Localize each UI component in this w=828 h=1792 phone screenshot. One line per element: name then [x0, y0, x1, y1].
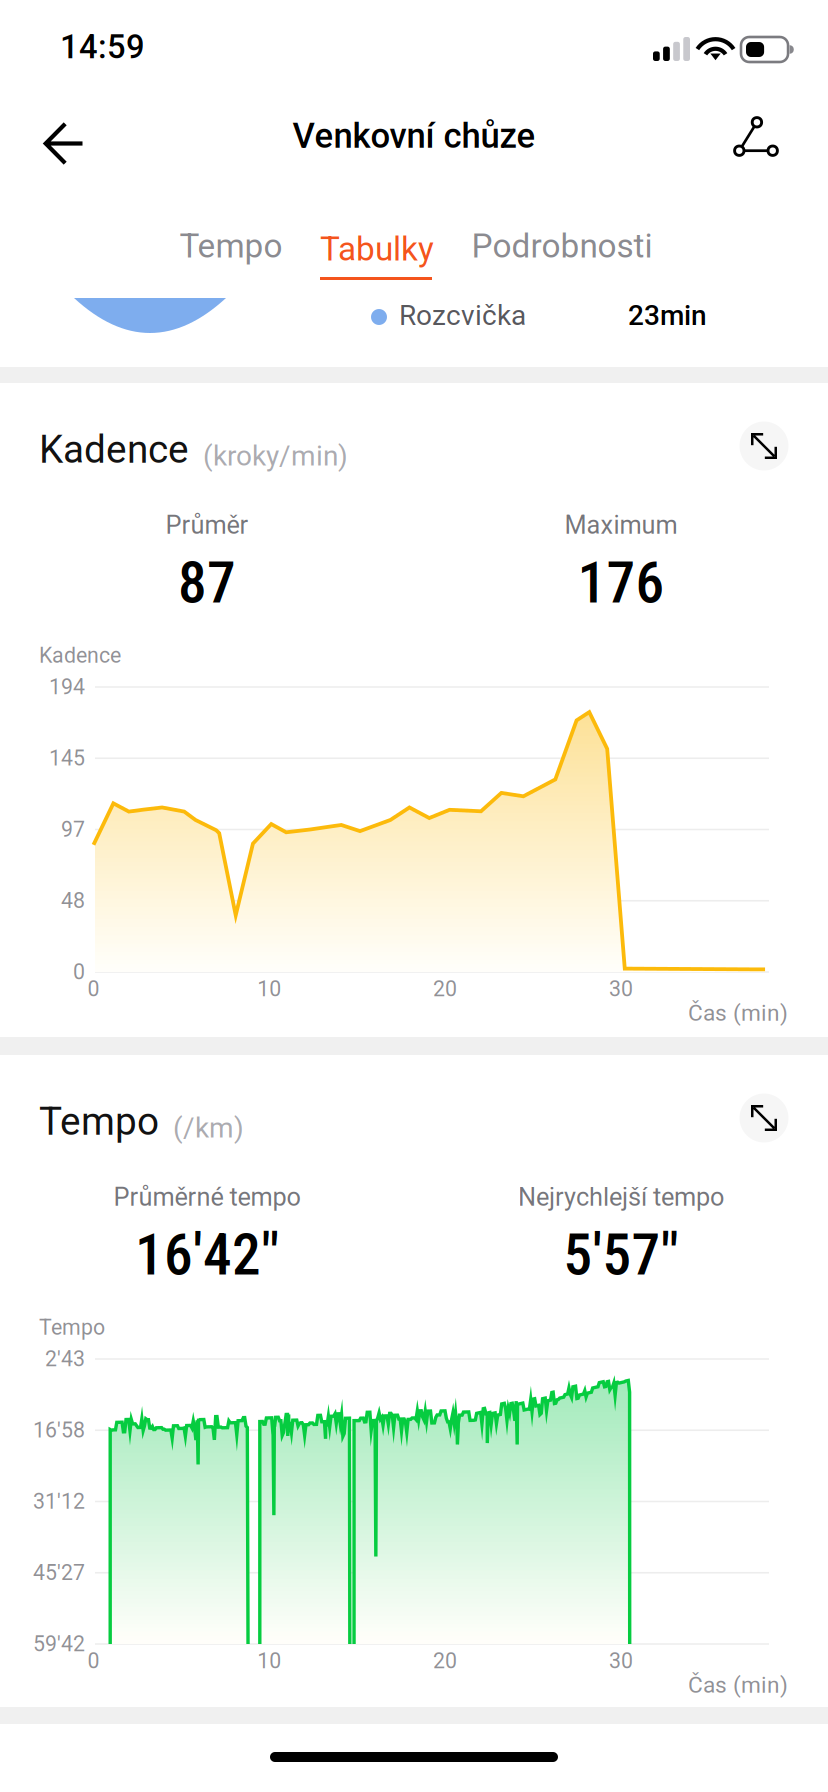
button[interactable]: Expand chart — [731, 413, 797, 479]
button[interactable]: Back — [24, 88, 134, 185]
button[interactable]: Share — [700, 88, 810, 185]
staticText: 31'12 — [33, 1489, 85, 1514]
button[interactable]: Tabulky — [302, 217, 452, 281]
staticText: 97 — [61, 817, 85, 842]
staticText: 87 — [178, 549, 236, 617]
button[interactable]: Tempo — [166, 217, 296, 275]
staticText: 20 — [433, 1648, 457, 1673]
staticText: Nejrychlejší tempo — [518, 1182, 724, 1212]
staticText: 10 — [257, 1648, 281, 1673]
staticText: Podrobnosti — [471, 226, 652, 266]
staticText: Tabulky — [320, 229, 434, 269]
staticText: 194 — [49, 674, 85, 699]
staticText: 0 — [87, 976, 99, 1001]
staticText: 0 — [87, 1648, 99, 1673]
staticText: 145 — [49, 746, 85, 771]
staticText: Venkovní chůze — [292, 116, 535, 156]
staticText: 0 — [73, 959, 85, 984]
staticText: 10 — [257, 976, 281, 1001]
staticText: 5'57" — [563, 1221, 678, 1289]
staticText: 23min — [628, 299, 707, 332]
staticText: Čas (min) — [688, 1672, 788, 1698]
staticText: Rozcvička — [399, 299, 526, 332]
staticText: 16'42" — [135, 1221, 279, 1289]
staticText: 20 — [433, 976, 457, 1001]
staticText: 16'58 — [33, 1418, 85, 1443]
staticText: 59'42 — [33, 1631, 85, 1656]
staticText: 176 — [577, 549, 664, 617]
button[interactable]: Podrobnosti — [454, 217, 670, 275]
staticText: 48 — [61, 888, 85, 913]
staticText: (/km) — [159, 1111, 244, 1144]
staticText: Průměr — [165, 510, 248, 540]
staticText: Kadence — [39, 643, 121, 668]
staticText: Průměrné tempo — [113, 1182, 300, 1212]
staticText: 45'27 — [33, 1560, 85, 1585]
button[interactable]: Expand chart — [731, 1085, 797, 1151]
staticText: Tempo — [39, 1315, 105, 1340]
staticText: 2'43 — [45, 1346, 85, 1371]
staticText: Maximum — [564, 510, 677, 540]
staticText: Čas (min) — [688, 1000, 788, 1026]
staticText: Kadence — [39, 427, 189, 472]
staticText: (kroky/min) — [189, 439, 348, 472]
staticText: 30 — [609, 1648, 633, 1673]
staticText: 30 — [609, 976, 633, 1001]
staticText: Tempo — [179, 226, 282, 266]
staticText: 14:59 — [60, 28, 145, 66]
staticText: Tempo — [39, 1099, 159, 1144]
